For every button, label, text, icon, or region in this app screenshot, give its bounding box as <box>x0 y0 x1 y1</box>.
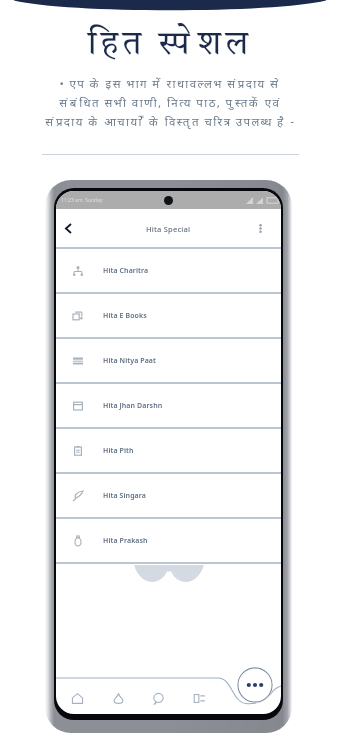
staticText: Hita Jhan Darshn <box>103 401 163 411</box>
staticText: Hita Pith <box>103 446 134 456</box>
staticText: Hita Special <box>146 224 191 234</box>
button[interactable]: Hita E Books <box>56 294 281 337</box>
button[interactable]: Notifications <box>107 687 129 709</box>
staticText: • एप के इस भाग में राधावल्लभ संप्रदाय से <box>59 78 281 93</box>
button[interactable]: Home <box>66 687 88 709</box>
button[interactable]: List <box>188 687 210 709</box>
button[interactable]: Back <box>58 218 78 238</box>
button[interactable]: More options <box>253 221 267 235</box>
staticText: संप्रदाय के आचार्यों के विस्तृत चरित्र उ… <box>45 116 296 131</box>
button[interactable]: More <box>237 667 273 703</box>
button[interactable]: Hita Singara <box>56 474 281 517</box>
staticText: संबंधित सभी वाणी, नित्य पाठ, पुस्तकें एव… <box>59 97 282 112</box>
button[interactable]: Hita Prakash <box>56 519 281 562</box>
button[interactable]: Hita Charitra <box>56 249 281 292</box>
staticText: हित स्पेशल <box>0 29 340 62</box>
staticText: Hita Charitra <box>103 266 149 276</box>
staticText: Hita Nitya Paat <box>103 356 156 366</box>
button[interactable]: Hita Jhan Darshn <box>56 384 281 427</box>
button[interactable]: Chat <box>147 687 169 709</box>
staticText: 11:23 am Sunday <box>61 197 103 204</box>
staticText: Hita Prakash <box>103 536 148 546</box>
staticText: Hita Singara <box>103 491 146 501</box>
staticText: Hita E Books <box>103 311 147 321</box>
button[interactable]: Hita Pith <box>56 429 281 472</box>
button[interactable]: Hita Nitya Paat <box>56 339 281 382</box>
